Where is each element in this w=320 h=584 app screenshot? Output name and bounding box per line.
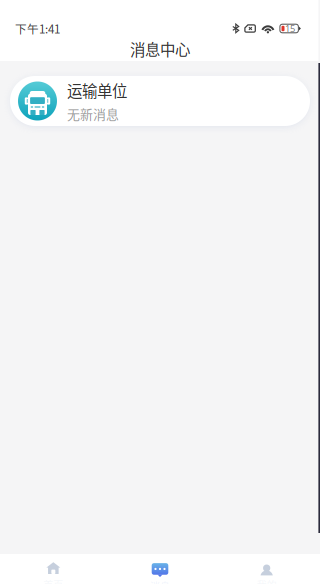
button[interactable]: 运输单位 xyxy=(10,76,310,126)
button[interactable]: 消息 xyxy=(107,562,213,584)
staticText: 消息中心 xyxy=(130,38,190,60)
button[interactable]: 首页 xyxy=(0,562,107,584)
staticText: 下午1:41 xyxy=(15,20,60,37)
staticText: 消息 xyxy=(150,579,170,584)
staticText: 首页 xyxy=(43,577,63,584)
button[interactable]: 我的 xyxy=(213,562,320,584)
staticText: 无新消息 xyxy=(67,104,119,123)
staticText: 15 xyxy=(285,22,295,35)
staticText: 运输单位 xyxy=(67,79,127,101)
